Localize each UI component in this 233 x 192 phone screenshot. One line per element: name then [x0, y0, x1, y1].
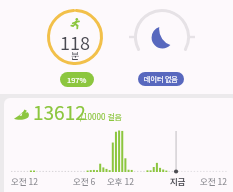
staticText: 오전 12: [200, 175, 227, 187]
staticText: 118: [60, 29, 90, 55]
other: Steps: [14, 108, 29, 120]
button[interactable]: Exercise: [47, 9, 103, 87]
staticText: 197%: [67, 74, 87, 85]
button[interactable]: 197%: [60, 72, 94, 87]
staticText: 분: [71, 49, 80, 62]
staticText: 13612: [33, 98, 86, 126]
button[interactable]: Sleep: [134, 9, 190, 87]
other: Exercise: [70, 18, 81, 29]
staticText: /10000 걸음: [80, 111, 122, 123]
staticText: 오후 12: [107, 175, 134, 187]
other: Sleep: [152, 26, 173, 49]
staticText: 지금: [170, 175, 186, 187]
button[interactable]: Steps: [4, 98, 233, 192]
staticText: 오전 6: [73, 175, 96, 187]
staticText: 데이터 없음: [144, 74, 178, 84]
button[interactable]: 데이터 없음: [138, 72, 184, 86]
staticText: 오전 12: [11, 175, 38, 187]
